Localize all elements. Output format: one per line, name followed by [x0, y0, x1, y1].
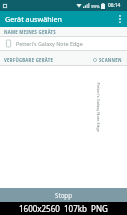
- button[interactable]: Stopp: [0, 188, 127, 202]
- staticText: Gerät auswählen: [5, 14, 62, 24]
- staticText: NAME MEINES GERÄTS: [4, 29, 56, 35]
- button[interactable]: More options: [113, 11, 127, 27]
- staticText: 06:14: [108, 2, 121, 9]
- staticText: Stopp: [55, 191, 72, 199]
- staticText: 1600x2560 107kb PNG: [19, 203, 108, 214]
- staticText: Petteri's Galaxy Note Edge: [95, 82, 100, 132]
- button[interactable]: SCANNEN: [88, 55, 127, 65]
- staticText: VERFÜGBARE GERÄTE: [4, 57, 54, 63]
- button[interactable]: Petteri's Galaxy Note Edge: [0, 37, 127, 50]
- staticText: 99%: [91, 3, 100, 9]
- staticText: Petteri's Galaxy Note Edge: [16, 40, 83, 47]
- staticText: SCANNEN: [99, 57, 122, 63]
